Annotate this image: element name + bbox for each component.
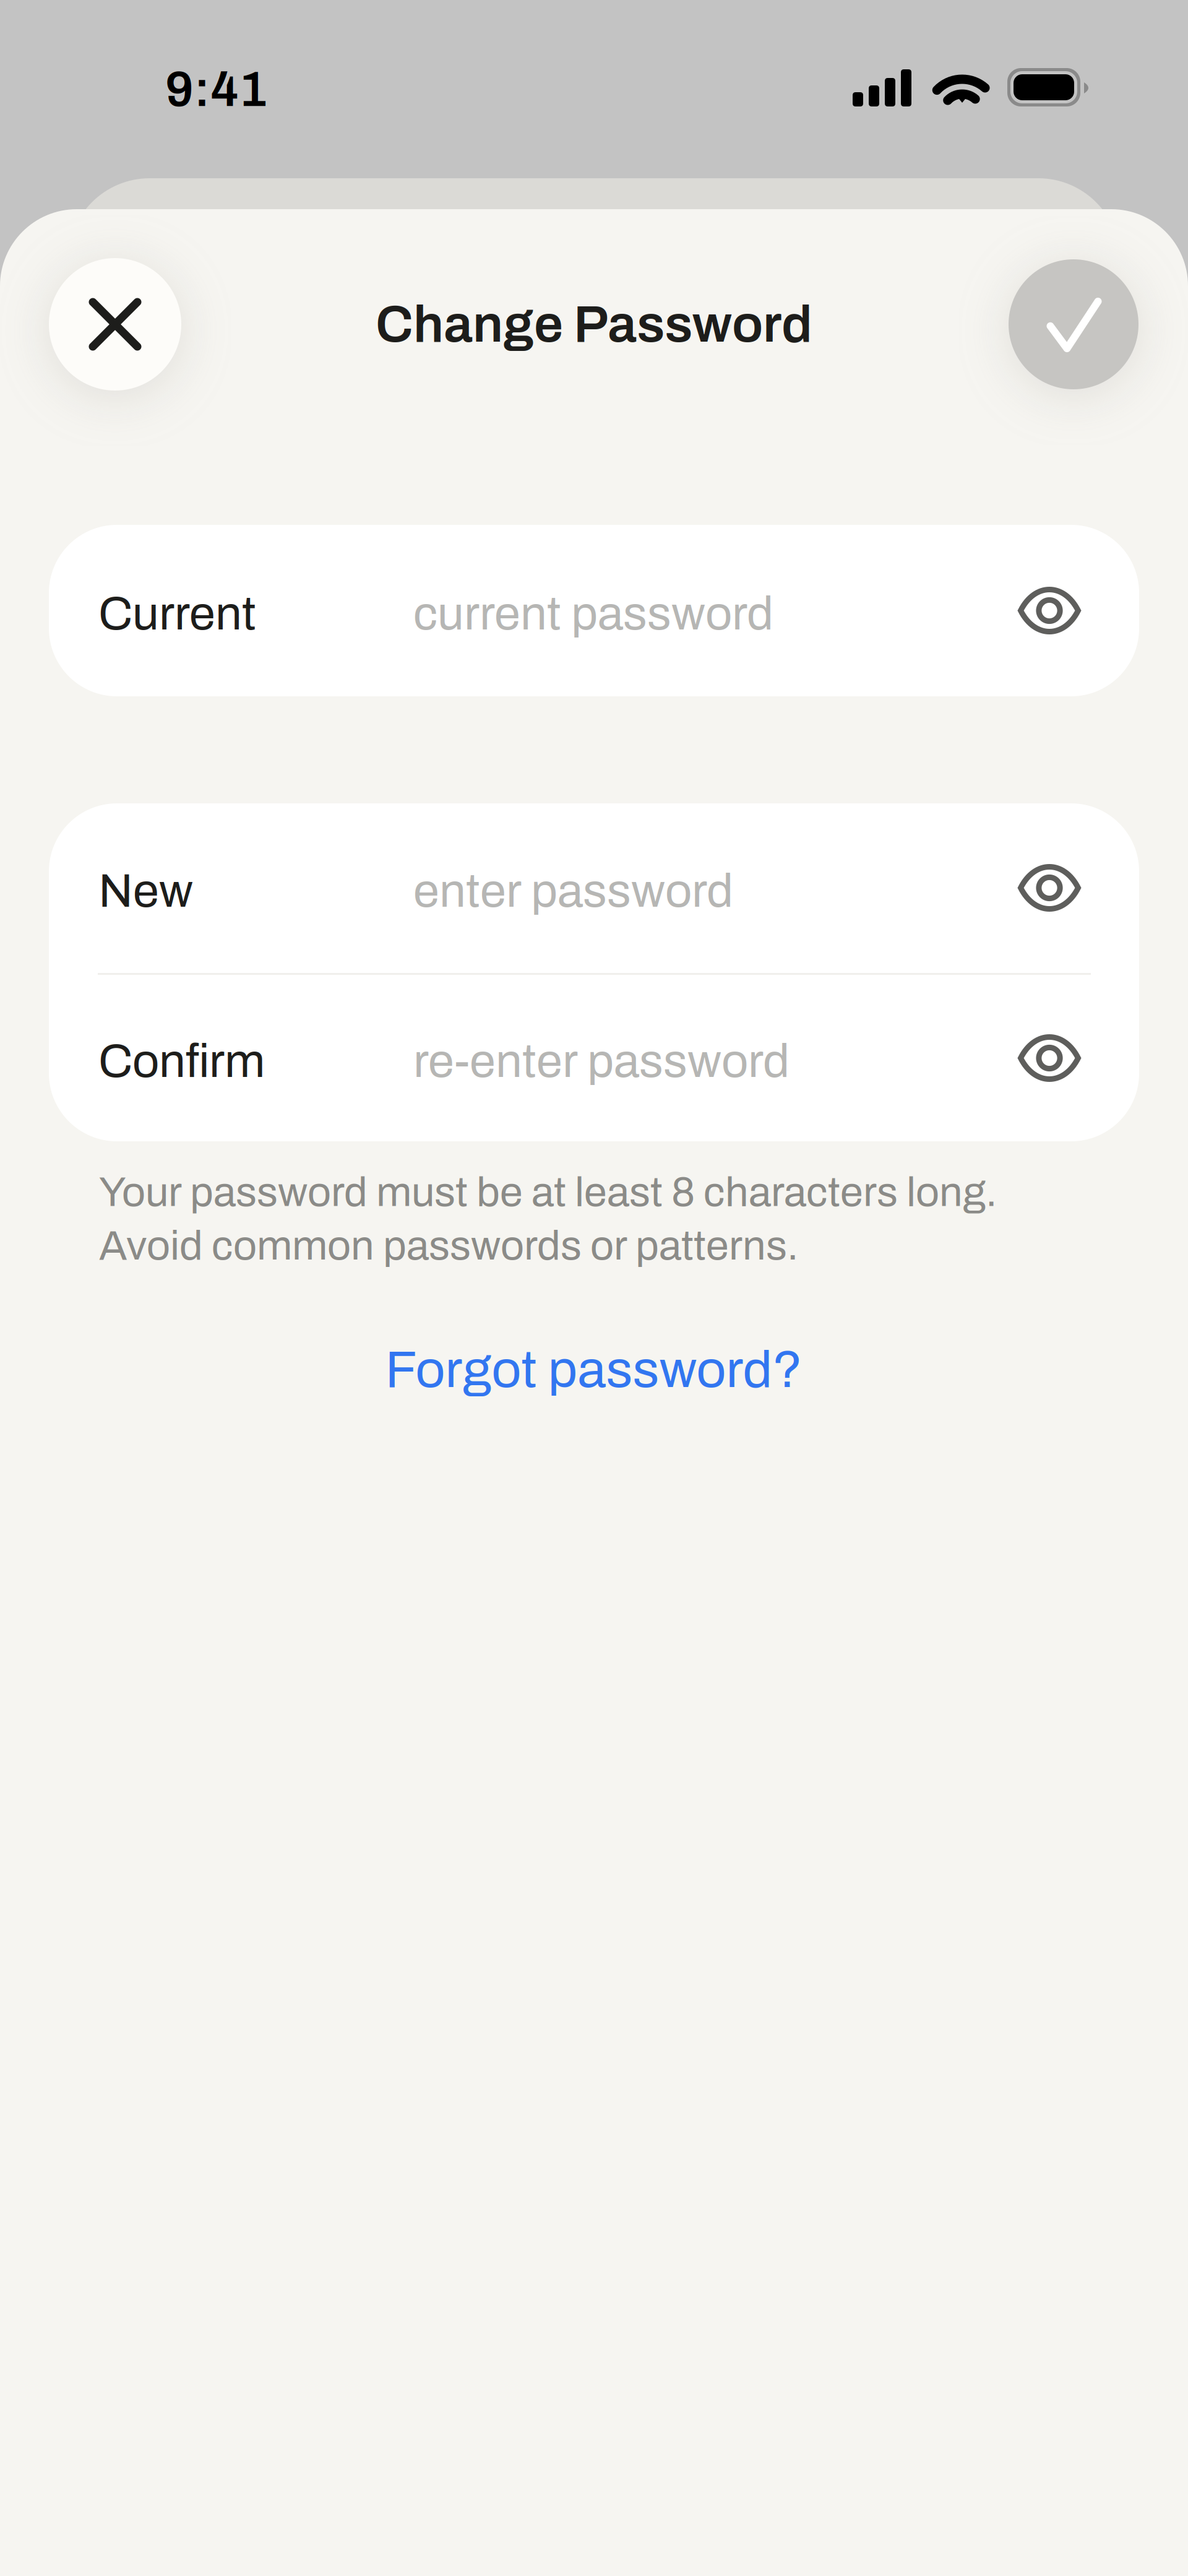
- staticText: Current: [98, 588, 256, 639]
- staticText: Your password must be at least 8 charact…: [99, 1170, 997, 1215]
- staticText: enter password: [413, 865, 733, 917]
- button[interactable]: Show current password: [991, 552, 1108, 669]
- button[interactable]: Forgot password?: [0, 1317, 1188, 1422]
- button[interactable]: Show confirm password: [991, 999, 1108, 1117]
- staticText: Change Password: [376, 296, 812, 353]
- button[interactable]: Save: [1009, 259, 1138, 389]
- staticText: Forgot password?: [385, 1341, 803, 1398]
- button[interactable]: Close: [49, 258, 181, 391]
- button[interactable]: Show new password: [991, 829, 1108, 947]
- staticText: Avoid common passwords or patterns.: [99, 1223, 798, 1268]
- staticText: 9:41: [165, 63, 267, 116]
- staticText: New: [98, 865, 193, 917]
- staticText: Confirm: [98, 1036, 265, 1087]
- staticText: current password: [413, 588, 773, 639]
- staticText: re-enter password: [413, 1036, 790, 1087]
